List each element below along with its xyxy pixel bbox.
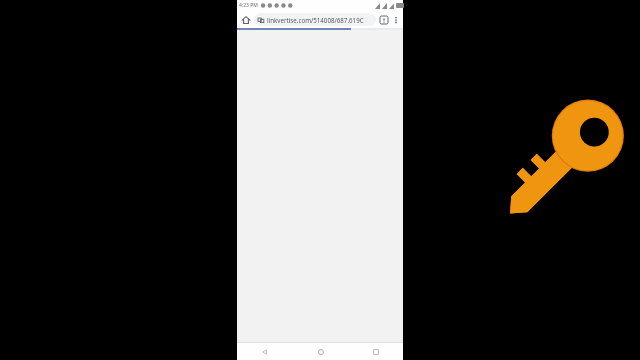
staticText: linkvertise.com/514008/687.619C [267,16,364,24]
button[interactable]: Back [237,343,293,360]
button[interactable]: More options [390,14,401,25]
button[interactable]: linkvertise.com/514008/687.619C [254,13,376,26]
staticText: 4:23 PM [239,2,258,9]
button[interactable]: Recent apps [348,343,403,360]
button[interactable]: Page info [378,14,390,26]
button[interactable]: Home [293,343,348,360]
button[interactable]: Home [240,14,252,26]
